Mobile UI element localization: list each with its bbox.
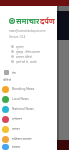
staticText: Breaking News bbox=[12, 87, 35, 91]
button[interactable]: स्वास्थ्य bbox=[0, 144, 57, 150]
button[interactable]: Breaking News bbox=[0, 84, 57, 94]
staticText: news@samachardarpan.com bbox=[9, 29, 46, 33]
staticText: व्यापार bbox=[12, 127, 20, 131]
staticText: स्वास्थ्य bbox=[12, 145, 21, 149]
staticText: मुखपृष्ठ - दैनिक समाचार bbox=[16, 50, 41, 54]
staticText: समाचार श्रेणियाँ bbox=[16, 55, 32, 59]
staticText: ऐप bbox=[12, 71, 16, 75]
staticText: सूचनाएं bbox=[16, 45, 24, 49]
staticText: मनोरंजन bbox=[12, 117, 22, 121]
staticText: समाचार bbox=[16, 16, 40, 26]
button[interactable]: राशिफल समाचार bbox=[0, 134, 57, 144]
button[interactable]: सूचनाएं bbox=[0, 44, 57, 49]
staticText: Local News bbox=[12, 97, 29, 101]
staticText: हमारे बारे में - सम्पर्क bbox=[16, 60, 37, 64]
staticText: राशिफल समाचार bbox=[12, 137, 32, 141]
button[interactable]: हमारे बारे में - सम्पर्क bbox=[0, 59, 57, 64]
button[interactable]: Local News bbox=[0, 94, 57, 104]
button[interactable]: ऐप bbox=[0, 69, 57, 76]
button[interactable]: मनोरंजन bbox=[0, 114, 57, 124]
staticText: National News bbox=[12, 107, 34, 111]
staticText: श्रेणियाँ bbox=[3, 78, 12, 82]
staticText: Version 1.0.4 bbox=[9, 35, 26, 39]
staticText: दर्पण bbox=[40, 16, 55, 26]
button[interactable]: मुखपृष्ठ - दैनिक समाचार bbox=[0, 49, 57, 54]
button[interactable]: समाचार श्रेणियाँ bbox=[0, 54, 57, 59]
button[interactable]: National News bbox=[0, 104, 57, 114]
button[interactable]: व्यापार bbox=[0, 124, 57, 134]
